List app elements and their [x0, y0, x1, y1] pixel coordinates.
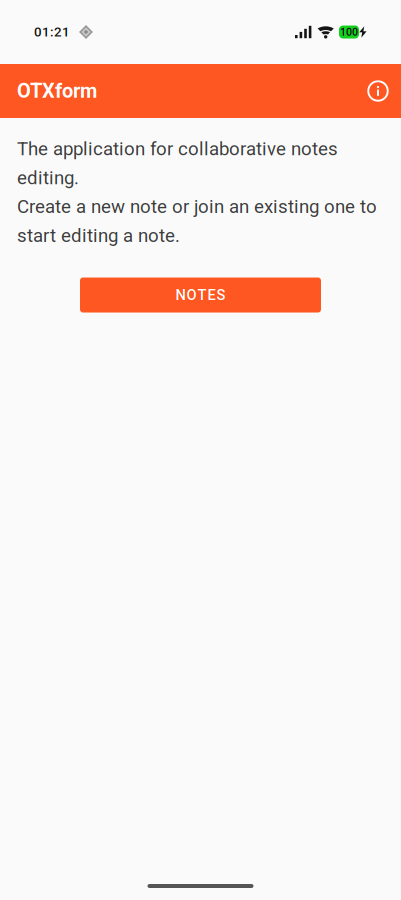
staticText: OTXform — [17, 79, 97, 103]
staticText: 100 — [340, 26, 358, 38]
staticText: The application for collaborative notes … — [17, 138, 338, 189]
staticText: Create a new note or join an existing on… — [17, 196, 377, 247]
staticText: NOTES — [175, 286, 225, 304]
button[interactable]: NOTES — [80, 277, 321, 312]
button[interactable]: About — [360, 73, 396, 109]
staticText: 01:21 — [34, 24, 70, 40]
